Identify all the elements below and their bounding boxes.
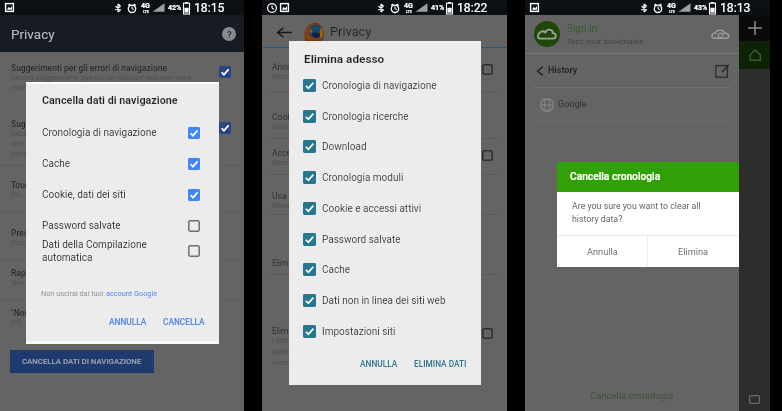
button[interactable]: Impostazioni siti: [289, 316, 481, 347]
staticText: Elimina adesso: [272, 258, 330, 268]
staticText: 4G: [141, 2, 150, 10]
button[interactable]: Precaricamento pagine web: [0, 228, 244, 247]
button[interactable]: Back: [268, 16, 300, 48]
button[interactable]: Cronologia di navigazione: [289, 70, 481, 101]
button[interactable]: Cronologia di navigazione: [26, 117, 219, 148]
staticText: Annulla: [587, 246, 618, 257]
button[interactable]: Help: [221, 26, 237, 42]
button[interactable]: Elimina adesso: [262, 258, 507, 268]
staticText: Rapporti sull'utilizzo: [11, 268, 88, 278]
staticText: Elimina: [272, 201, 296, 210]
button[interactable]: Cache: [289, 254, 481, 285]
button[interactable]: Elimina dati: [262, 326, 507, 366]
staticText: Sync your bookmarks: [567, 37, 644, 46]
staticText: Password salvate: [42, 220, 188, 232]
staticText: Elimina adesso: [304, 52, 385, 66]
staticText: ELIMINA DATI: [414, 359, 467, 369]
staticText: Cronologia ricerche: [322, 111, 409, 123]
staticText: 42%: [168, 4, 182, 12]
staticText: Dati della Compilazione automatica: [42, 239, 188, 263]
button[interactable]: Cookie: [262, 112, 507, 131]
staticText: Cronologia moduli: [322, 172, 404, 184]
button[interactable]: Cancella cronologia: [525, 379, 739, 411]
staticText: Usa dati: [272, 191, 303, 201]
staticText: CANCELLA DATI DI NAVIGAZIONE: [22, 357, 142, 366]
button[interactable]: Home: [739, 41, 770, 69]
other: Edit: [715, 63, 730, 78]
staticText: On: [11, 190, 21, 199]
button[interactable]: Elimina: [648, 236, 739, 267]
button[interactable]: "Non tenere traccia": [0, 308, 244, 327]
button[interactable]: Touch to Search: [0, 180, 244, 199]
staticText: Sign in: [567, 23, 597, 35]
other: Sync: [711, 25, 730, 44]
staticText: Cookie, dati dei siti: [42, 189, 188, 201]
staticText: Cache: [322, 264, 350, 276]
staticText: Impostazioni siti: [322, 326, 396, 338]
staticText: Elimina: [678, 246, 709, 257]
button[interactable]: Download: [289, 131, 481, 162]
button[interactable]: Suggerimenti per gli errori di navigazio…: [0, 63, 244, 92]
staticText: CANCELLA: [163, 317, 205, 327]
staticText: Mostra suggerimenti quando un indirizzo …: [11, 73, 192, 92]
button[interactable]: History: [525, 54, 739, 87]
staticText: I dati saranno eliminati automaticamente…: [272, 336, 384, 366]
staticText: Cancella cronologia: [570, 171, 661, 183]
staticText: Dati non in linea dei siti web: [322, 295, 446, 307]
staticText: Suggerimenti per gli errori di navigazio…: [11, 63, 168, 73]
staticText: 41%: [431, 4, 445, 12]
staticText: 18:13: [720, 1, 751, 15]
button[interactable]: ANNULLA: [352, 355, 406, 373]
staticText: Solo su reti Wi-Fi: [11, 238, 66, 247]
staticText: Privacy: [330, 24, 372, 39]
staticText: account Google: [106, 289, 158, 298]
button[interactable]: Cronologia ricerche: [289, 101, 481, 132]
button[interactable]: New tab: [739, 15, 770, 41]
button[interactable]: Usa dati: [262, 191, 507, 210]
button[interactable]: Suggerimenti di ricerca e URL: [0, 119, 244, 158]
staticText: Cache: [42, 158, 188, 170]
staticText: 18:15: [194, 1, 225, 15]
staticText: LTE: [406, 10, 412, 14]
staticText: ?: [227, 29, 232, 40]
button[interactable]: Rapporti sull'utilizzo: [0, 268, 244, 287]
staticText: 4G: [404, 2, 413, 10]
button[interactable]: Google: [525, 88, 739, 121]
button[interactable]: Cache: [26, 148, 219, 179]
button[interactable]: Sign in: [525, 15, 739, 53]
button[interactable]: Cookie, dati dei siti: [26, 179, 219, 210]
button[interactable]: Password salvate: [289, 224, 481, 255]
staticText: Suggerimenti di ricerca e URL: [11, 119, 124, 129]
staticText: Cronologia di navigazione: [42, 127, 188, 139]
staticText: Richiedi che i siti non traccino: [272, 72, 369, 81]
staticText: Privacy: [11, 26, 55, 42]
button[interactable]: Cronologia moduli: [289, 162, 481, 193]
button[interactable]: CANCELLA DATI DI NAVIGAZIONE: [10, 350, 154, 373]
button[interactable]: Anonimo: [262, 62, 507, 81]
button[interactable]: Cookie e accessi attivi: [289, 193, 481, 224]
staticText: Are you sure you want to clear all histo…: [572, 201, 701, 224]
staticText: 43%: [694, 4, 708, 12]
button[interactable]: ELIMINA DATI: [406, 355, 475, 373]
staticText: Non inviare: [11, 278, 48, 287]
staticText: Anonimo: [272, 62, 307, 72]
staticText: "Non tenere traccia": [11, 308, 87, 318]
staticText: Utilizza un servizio di previsione per c…: [11, 129, 155, 158]
staticText: LTE: [143, 10, 149, 14]
button[interactable]: Password salvate: [26, 210, 219, 241]
button[interactable]: CANCELLA: [155, 313, 213, 331]
button[interactable]: ANNULLA: [101, 313, 155, 331]
staticText: Precaricamento pagine web: [11, 228, 117, 238]
button[interactable]: Dati non in linea dei siti web: [289, 285, 481, 316]
button[interactable]: Accesso: [262, 148, 507, 167]
staticText: Cancella cronologia: [590, 390, 674, 401]
staticText: Download: [322, 141, 367, 153]
button[interactable]: Annulla: [557, 236, 647, 267]
staticText: ANNULLA: [109, 317, 147, 327]
staticText: Ricorda accessi: [272, 158, 324, 167]
staticText: ANNULLA: [360, 359, 398, 369]
button[interactable]: Dati della Compilazione automatica: [26, 235, 219, 267]
staticText: 18:22: [457, 1, 488, 15]
staticText: 4G: [667, 2, 676, 10]
staticText: History: [548, 65, 578, 76]
